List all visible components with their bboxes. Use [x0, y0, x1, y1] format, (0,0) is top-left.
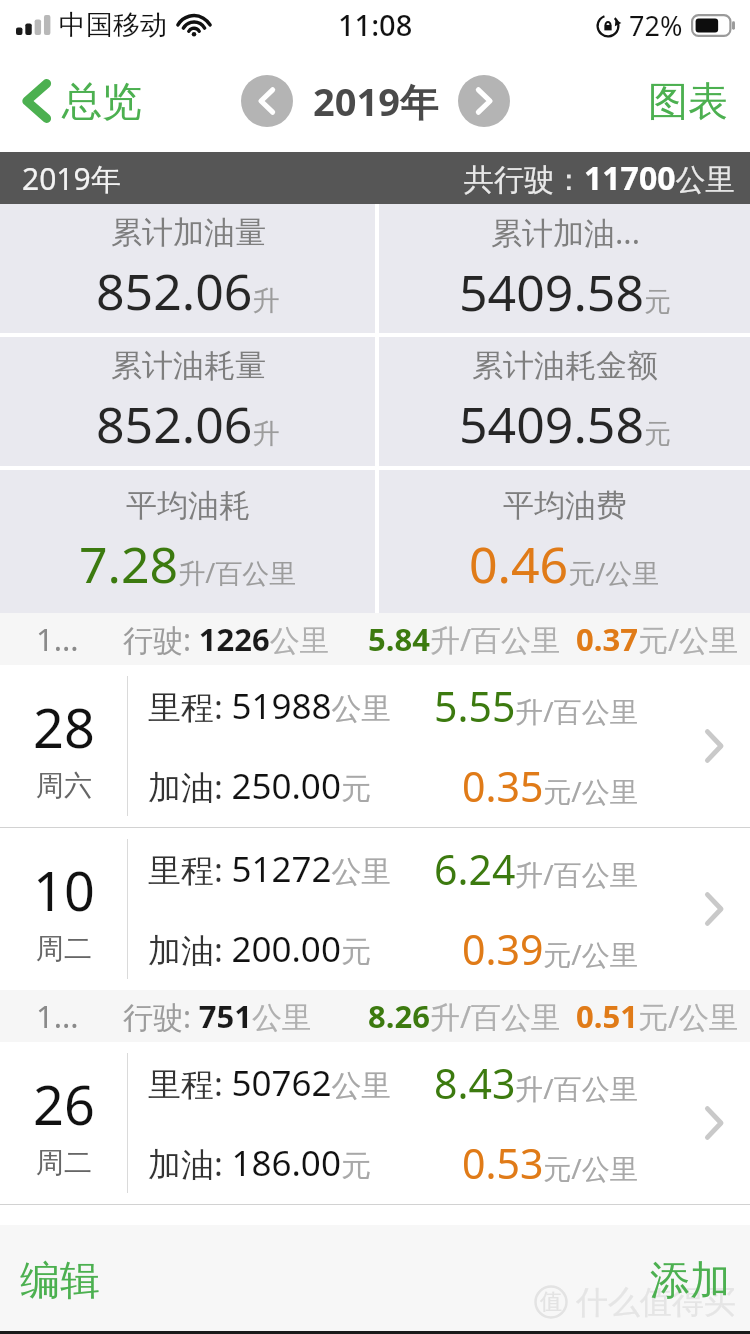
staticText: 10 — [33, 853, 95, 927]
staticText: 28 — [33, 690, 95, 764]
staticText: 里程: 51988公里 — [148, 682, 392, 730]
staticText: 共行驶：11700公里 — [464, 156, 736, 200]
staticText: 什么值得买 — [576, 1282, 736, 1322]
button[interactable]: 28 — [0, 665, 750, 827]
staticText: 累计加油... — [491, 211, 640, 253]
button[interactable]: 总览 — [16, 68, 148, 134]
button[interactable]: 1... — [0, 613, 750, 665]
staticText: 5409.58元 — [459, 258, 671, 326]
staticText: 0.51元/公里 — [576, 995, 740, 1037]
button[interactable]: Next year — [458, 75, 510, 127]
button[interactable]: 平均油耗 — [0, 470, 375, 613]
staticText: 总览 — [62, 76, 142, 126]
staticText: 7.28升/百公里 — [79, 530, 297, 598]
staticText: 8.43升/百公里 — [434, 1055, 638, 1111]
staticText: 添加 — [650, 1255, 730, 1305]
staticText: 26 — [33, 1067, 95, 1141]
staticText: 6.24升/百公里 — [434, 841, 638, 897]
button[interactable]: 10 — [0, 828, 750, 990]
staticText: 周二 — [36, 1145, 92, 1180]
staticText: 2019年 — [313, 75, 438, 127]
staticText: 里程: 51272公里 — [148, 845, 392, 893]
staticText: 周二 — [36, 931, 92, 966]
staticText: 5409.58元 — [459, 390, 671, 458]
button[interactable]: 26 — [0, 1042, 750, 1204]
staticText: 852.06升 — [96, 390, 280, 458]
staticText: 平均油费 — [503, 486, 627, 525]
staticText: 加油: 250.00元 — [148, 762, 371, 810]
staticText: 5.55升/百公里 — [434, 678, 638, 734]
staticText: 2019年 — [22, 158, 121, 199]
staticText: 累计油耗量 — [111, 346, 266, 385]
button[interactable]: 图表 — [640, 68, 736, 134]
staticText: 行驶: 1226公里 — [123, 618, 330, 660]
button[interactable]: 平均油费 — [379, 470, 750, 613]
staticText: 5.84升/百公里 — [368, 618, 562, 660]
staticText: 1... — [36, 618, 79, 660]
staticText: 加油: 200.00元 — [148, 925, 371, 973]
staticText: 72% — [629, 7, 683, 44]
button[interactable]: 1... — [0, 990, 750, 1042]
staticText: 累计油耗金额 — [472, 346, 658, 385]
staticText: 8.26升/百公里 — [368, 995, 562, 1037]
staticText: 加油: 186.00元 — [148, 1139, 371, 1187]
staticText: 0.37元/公里 — [576, 618, 740, 660]
button[interactable]: 累计加油量 — [0, 204, 375, 333]
button[interactable]: 累计油耗金额 — [379, 337, 750, 466]
staticText: 累计加油量 — [111, 213, 266, 252]
button[interactable]: 累计加油... — [379, 204, 750, 333]
staticText: 平均油耗 — [126, 486, 250, 525]
staticText: 11:08 — [338, 5, 413, 44]
button[interactable]: 编辑 — [12, 1245, 108, 1315]
staticText: 值 — [540, 1288, 562, 1316]
staticText: 行驶: 751公里 — [123, 995, 313, 1037]
staticText: 0.46元/公里 — [469, 530, 660, 598]
staticText: 1... — [36, 995, 79, 1037]
staticText: 编辑 — [20, 1255, 100, 1305]
staticText: 周六 — [36, 768, 92, 803]
button[interactable]: Previous year — [241, 75, 293, 127]
staticText: 0.35元/公里 — [462, 758, 638, 814]
button[interactable]: 累计油耗量 — [0, 337, 375, 466]
staticText: 0.39元/公里 — [462, 921, 638, 977]
button[interactable]: 添加 — [642, 1245, 738, 1315]
staticText: 中国移动 — [59, 8, 167, 42]
staticText: 里程: 50762公里 — [148, 1059, 392, 1107]
staticText: 图表 — [648, 76, 728, 126]
staticText: 0.53元/公里 — [462, 1135, 638, 1191]
staticText: 852.06升 — [96, 257, 280, 325]
